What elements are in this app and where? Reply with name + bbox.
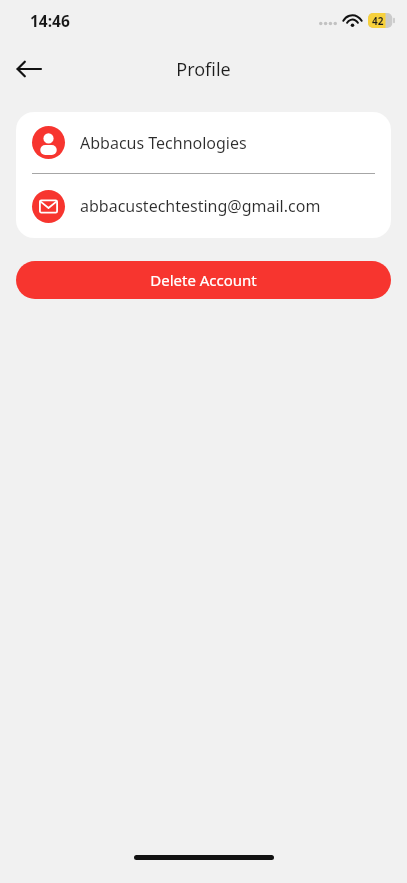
button[interactable]: Delete Account [16,261,391,299]
staticText: 42 [372,14,384,28]
button[interactable]: abbacustechtesting@gmail.com [16,174,391,238]
staticText: Abbacus Technologies [80,132,247,154]
button[interactable]: Back [7,47,51,91]
staticText: abbacustechtesting@gmail.com [80,195,321,217]
staticText: Delete Account [150,270,257,290]
staticText: Profile [176,57,231,82]
other: Battery 42 percent [368,13,395,28]
button[interactable]: Abbacus Technologies [16,112,391,173]
staticText: 14:46 [30,10,70,31]
